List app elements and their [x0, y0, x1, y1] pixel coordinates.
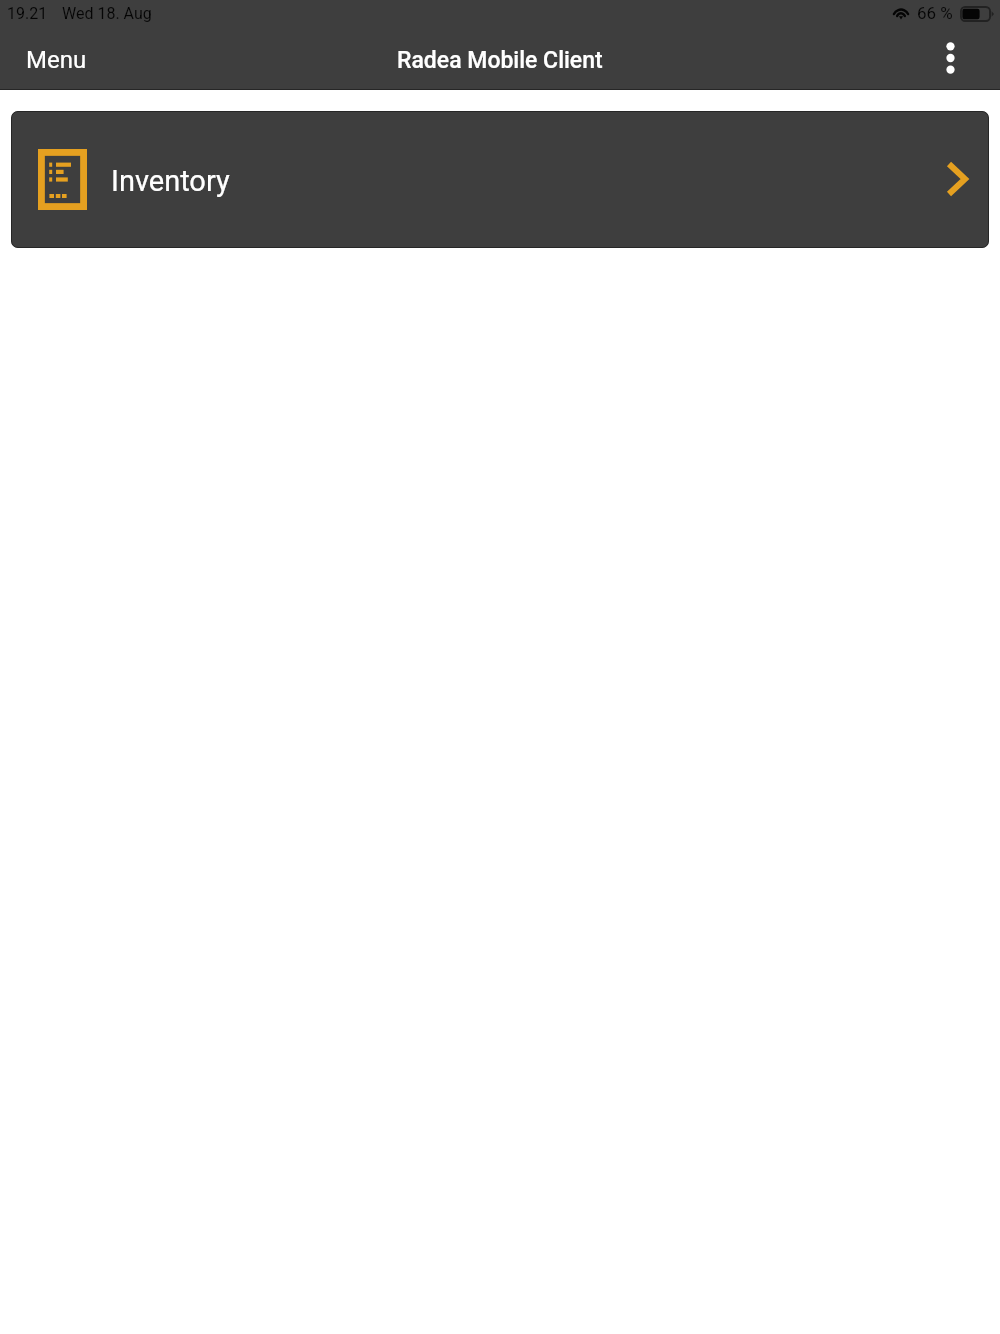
staticText: Inventory	[111, 164, 230, 198]
staticText: Menu	[26, 46, 87, 74]
staticText: Wed 18. Aug	[62, 4, 152, 23]
button[interactable]: Menu	[0, 30, 115, 90]
staticText: 19.21	[7, 4, 48, 23]
button[interactable]: More options	[916, 30, 1000, 90]
staticText: 66 %	[917, 3, 953, 23]
button[interactable]: Inventory	[11, 111, 989, 248]
staticText: Radea Mobile Client	[397, 47, 603, 74]
